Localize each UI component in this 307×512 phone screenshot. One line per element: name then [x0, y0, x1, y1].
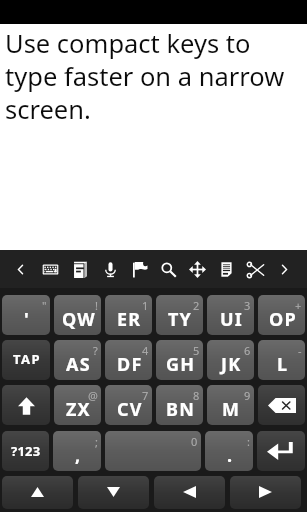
staticText: TY	[168, 307, 193, 332]
staticText: :	[247, 434, 250, 449]
other: Up	[31, 487, 44, 497]
other: Delete	[268, 398, 296, 413]
staticText: ?	[93, 343, 98, 358]
staticText: "	[42, 298, 47, 313]
staticText: 4	[142, 343, 149, 358]
staticText: UI	[220, 307, 244, 332]
staticText: 3	[244, 298, 251, 313]
staticText: AS	[66, 352, 91, 377]
staticText: 1	[142, 298, 149, 313]
button[interactable]: Cut	[241, 250, 270, 288]
staticText: BN	[166, 397, 196, 422]
staticText: CV	[117, 397, 143, 422]
button[interactable]: Right	[230, 476, 301, 509]
other: Right	[259, 486, 272, 498]
staticText: 8	[193, 388, 200, 403]
button[interactable]: UI	[207, 295, 254, 335]
button[interactable]: M	[207, 385, 254, 425]
button[interactable]: TAP	[2, 340, 50, 380]
button[interactable]: CV	[105, 385, 152, 425]
button[interactable]: Delete	[258, 385, 305, 425]
button[interactable]: 0	[105, 431, 201, 471]
button[interactable]: TY	[156, 295, 203, 335]
other: Shift	[18, 397, 35, 415]
other: Down	[107, 487, 120, 497]
button[interactable]: '	[2, 295, 50, 335]
staticText: ,	[75, 443, 82, 468]
button[interactable]: .	[205, 431, 253, 471]
staticText: ER	[117, 307, 142, 332]
staticText: 2	[193, 298, 200, 313]
staticText: OP	[269, 307, 297, 332]
staticText: DF	[117, 352, 143, 377]
staticText: '	[24, 307, 30, 332]
button[interactable]: OP	[258, 295, 305, 335]
staticText: 0	[191, 434, 198, 449]
other: Left	[183, 486, 196, 498]
staticText: -	[298, 343, 302, 358]
staticText: L	[277, 352, 289, 377]
button[interactable]: Move	[183, 250, 212, 288]
button[interactable]: ZX	[54, 385, 101, 425]
button[interactable]: ,	[53, 431, 101, 471]
staticText: M	[222, 397, 241, 422]
button[interactable]: BN	[156, 385, 203, 425]
button[interactable]: JK	[207, 340, 254, 380]
button[interactable]: Keyboard	[35, 250, 65, 288]
button[interactable]: GH	[156, 340, 203, 380]
button[interactable]: Flag	[125, 250, 154, 288]
button[interactable]: DF	[105, 340, 152, 380]
button[interactable]: Shift	[2, 385, 50, 425]
staticText: 5	[193, 343, 200, 358]
staticText: QW	[62, 307, 96, 332]
button[interactable]: Left	[154, 476, 225, 509]
button[interactable]: Next	[270, 250, 299, 288]
button[interactable]: Previous	[5, 250, 35, 288]
staticText: JK	[221, 352, 242, 377]
staticText: Use compact keys to type faster on a nar…	[5, 26, 305, 126]
staticText: @	[88, 388, 98, 403]
button[interactable]: Notes	[65, 250, 95, 288]
button[interactable]: Down	[78, 476, 149, 509]
staticText: !	[95, 298, 98, 313]
button[interactable]: Clipboard	[212, 250, 241, 288]
staticText: 7	[142, 388, 149, 403]
staticText: TAP	[13, 350, 41, 368]
staticText: ZX	[66, 397, 91, 422]
other: Enter	[267, 442, 295, 460]
staticText: ?123	[11, 442, 41, 460]
button[interactable]: Search	[154, 250, 183, 288]
staticText: ;	[95, 434, 98, 449]
button[interactable]: QW	[54, 295, 101, 335]
staticText: 6	[244, 343, 251, 358]
staticText: .	[227, 443, 234, 468]
button[interactable]: Enter	[257, 431, 305, 471]
staticText: +	[295, 298, 302, 313]
button[interactable]: Voice input	[95, 250, 125, 288]
staticText: GH	[166, 352, 196, 377]
button[interactable]: ER	[105, 295, 152, 335]
button[interactable]: AS	[54, 340, 101, 380]
button[interactable]: ?123	[2, 431, 49, 471]
button[interactable]: Up	[2, 476, 73, 509]
staticText: 9	[244, 388, 251, 403]
button[interactable]: L	[258, 340, 305, 380]
